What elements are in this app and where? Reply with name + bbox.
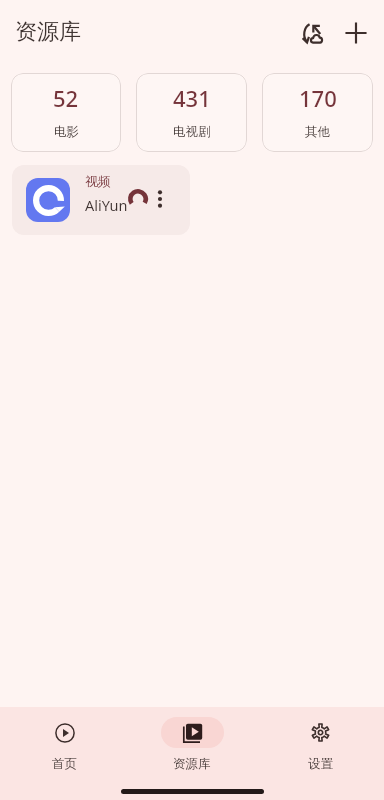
staticText: 52 [53,83,79,113]
staticText: 设置 [308,756,333,772]
button[interactable]: 资源库 [128,707,256,781]
staticText: 视频 [85,173,111,189]
button[interactable]: 170 [262,73,373,152]
staticText: 电影 [54,124,79,140]
staticText: AliYun [85,195,128,215]
button[interactable]: 52 [11,73,121,152]
staticText: 170 [299,83,337,113]
staticText: 资源库 [173,756,211,772]
button[interactable]: More options [148,187,172,211]
button[interactable]: Add [334,11,378,55]
staticText: 首页 [52,756,77,772]
button[interactable]: Sync to cloud [290,11,334,55]
button[interactable]: 设置 [256,707,384,781]
button[interactable]: 视频 [12,165,190,235]
staticText: 电视剧 [173,124,211,140]
staticText: 资源库 [15,18,81,46]
button[interactable]: 首页 [0,707,128,781]
staticText: 431 [173,83,211,113]
staticText: 其他 [305,124,330,140]
button[interactable]: 431 [136,73,247,152]
